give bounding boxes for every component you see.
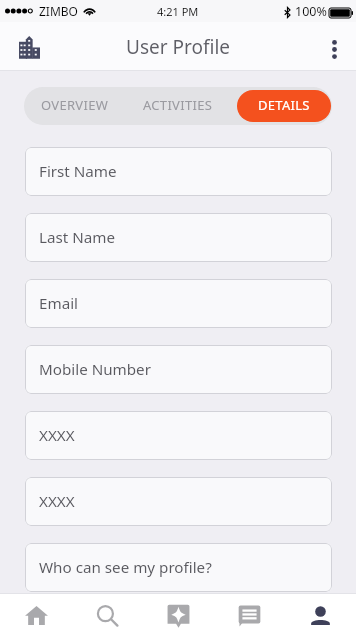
button[interactable]: ACTIVITIES <box>126 87 229 125</box>
staticText: DETAILS <box>258 96 310 114</box>
staticText: OVERVIEW <box>41 96 109 114</box>
staticText: XXXX <box>39 491 75 512</box>
button[interactable]: Last Name <box>25 213 332 262</box>
button[interactable]: Email <box>25 279 332 328</box>
staticText: 100% <box>295 3 327 20</box>
staticText: ACTIVITIES <box>143 96 213 114</box>
button[interactable]: Profile <box>285 593 356 638</box>
staticText: User Profile <box>126 34 231 60</box>
button[interactable]: More options <box>316 29 352 65</box>
staticText: First Name <box>39 161 117 182</box>
staticText: Email <box>39 293 79 314</box>
button[interactable]: Company <box>7 25 51 69</box>
button[interactable]: OVERVIEW <box>24 87 126 125</box>
staticText: Who can see my profile? <box>39 557 212 578</box>
button[interactable]: DETAILS <box>237 90 331 122</box>
staticText: 4:21 PM <box>157 4 199 19</box>
button[interactable]: Who can see my profile? <box>25 543 332 592</box>
button[interactable]: Search <box>72 593 143 638</box>
staticText: Mobile Number <box>39 359 151 380</box>
staticText: Last Name <box>39 227 116 248</box>
button[interactable]: First Name <box>25 147 332 196</box>
button[interactable]: Home <box>0 593 72 638</box>
staticText: ZIMBO <box>39 3 78 19</box>
staticText: XXXX <box>39 425 75 446</box>
button[interactable]: XXXX <box>25 477 332 526</box>
button[interactable]: XXXX <box>25 411 332 460</box>
button[interactable]: Messages <box>214 593 285 638</box>
button[interactable]: Highlights <box>143 593 214 638</box>
button[interactable]: Mobile Number <box>25 345 332 394</box>
